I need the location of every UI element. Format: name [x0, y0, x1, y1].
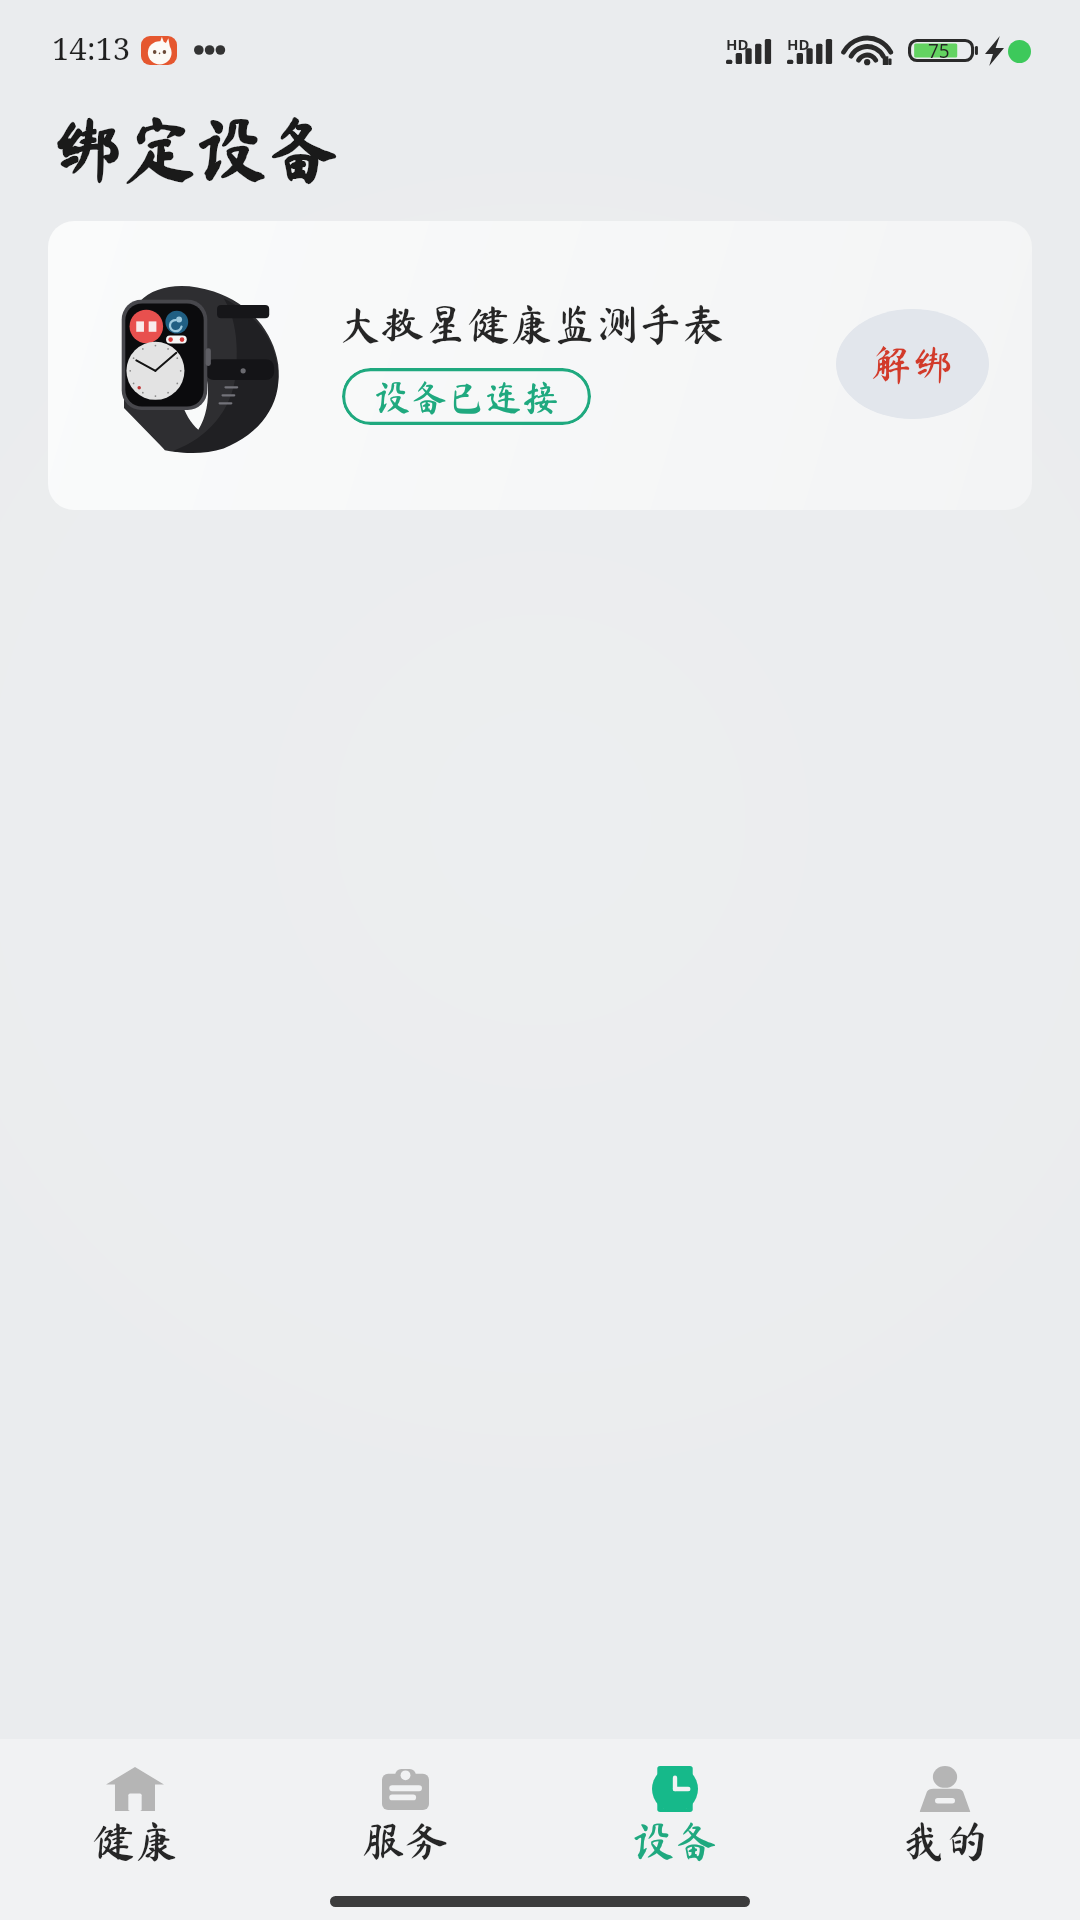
- staticText: 设备: [632, 1819, 718, 1862]
- staticText: 健康: [92, 1819, 178, 1862]
- staticText: 设备已连接: [374, 378, 559, 415]
- staticText: HD: [787, 34, 810, 54]
- staticText: HD: [726, 34, 749, 54]
- button[interactable]: 设备: [540, 1739, 810, 1869]
- button[interactable]: 健康: [0, 1739, 270, 1869]
- staticText: 75: [928, 38, 950, 61]
- staticText: 大救星健康监测手表: [338, 302, 725, 345]
- staticText: 14:13: [52, 27, 131, 69]
- button[interactable]: 大救星健康监测手表: [48, 221, 1032, 510]
- button[interactable]: 我的: [810, 1739, 1080, 1869]
- staticText: 服务: [362, 1819, 448, 1862]
- other: 大救星健康监测手表: [116, 284, 279, 451]
- staticText: 解绑: [870, 343, 955, 385]
- button[interactable]: 解绑: [836, 309, 989, 419]
- button[interactable]: 设备已连接: [342, 368, 591, 425]
- staticText: 绑定设备: [52, 113, 341, 185]
- staticText: 我的: [902, 1819, 988, 1862]
- button[interactable]: 服务: [270, 1739, 540, 1869]
